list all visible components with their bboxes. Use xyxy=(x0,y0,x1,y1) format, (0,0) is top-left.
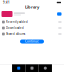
staticText: Library xyxy=(25,4,39,10)
staticText: Recently added xyxy=(6,20,28,24)
staticText: 9:41 xyxy=(3,1,10,4)
button[interactable]: Downloaded xyxy=(0,25,64,31)
button[interactable]: Recently added xyxy=(0,19,64,25)
button[interactable]: Settings xyxy=(39,64,52,72)
button[interactable]: Home xyxy=(12,64,25,72)
button[interactable]: Play xyxy=(57,12,61,16)
staticText: Downloaded xyxy=(6,26,24,30)
staticText: Continue xyxy=(25,40,39,43)
button[interactable]: Shared albums xyxy=(0,31,64,37)
button[interactable]: Continue xyxy=(20,39,44,43)
button[interactable]: Browse xyxy=(25,64,39,72)
staticText: Shared albums xyxy=(6,32,25,36)
